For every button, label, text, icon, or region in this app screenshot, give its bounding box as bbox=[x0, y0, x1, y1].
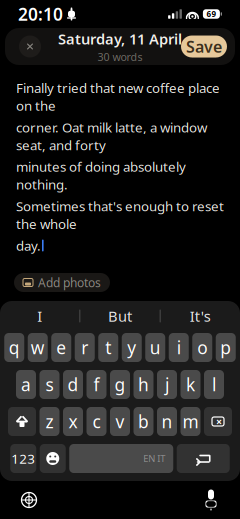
button[interactable]: a bbox=[16, 370, 36, 399]
staticText: l bbox=[212, 373, 216, 396]
button[interactable]: z bbox=[39, 407, 59, 436]
button[interactable]: w bbox=[28, 333, 48, 362]
button[interactable]: q bbox=[4, 333, 24, 362]
button[interactable]: 123 bbox=[10, 444, 36, 473]
staticText: x bbox=[68, 410, 77, 433]
staticText: 30 words bbox=[97, 50, 142, 64]
staticText: w bbox=[31, 336, 45, 359]
button[interactable]: g bbox=[110, 370, 130, 399]
staticText: z bbox=[45, 410, 53, 433]
staticText: p bbox=[220, 336, 231, 359]
button[interactable]: t bbox=[98, 333, 118, 362]
staticText: minutes of doing absolutely nothing. bbox=[16, 158, 186, 193]
staticText: EN IT bbox=[143, 452, 165, 465]
staticText: v bbox=[115, 410, 124, 433]
button[interactable]: n bbox=[157, 407, 177, 436]
staticText: o bbox=[197, 336, 207, 359]
button[interactable]: I bbox=[0, 301, 79, 331]
staticText: a bbox=[21, 373, 31, 396]
button[interactable]: k bbox=[180, 370, 200, 399]
button[interactable]: But bbox=[80, 301, 160, 331]
button[interactable]: Delete bbox=[204, 407, 232, 436]
staticText: day. bbox=[16, 237, 41, 254]
button[interactable]: Dictate bbox=[196, 485, 226, 515]
button[interactable]: b bbox=[133, 407, 153, 436]
staticText: n bbox=[161, 410, 172, 433]
button[interactable]: d bbox=[63, 370, 83, 399]
staticText: k bbox=[186, 373, 195, 396]
button[interactable]: u bbox=[145, 333, 165, 362]
staticText: But bbox=[108, 306, 132, 326]
button[interactable]: c bbox=[86, 407, 106, 436]
staticText: It's bbox=[190, 306, 211, 326]
button[interactable]: o bbox=[192, 333, 212, 362]
button[interactable]: p bbox=[216, 333, 236, 362]
button[interactable]: e bbox=[51, 333, 71, 362]
staticText: 20:10 bbox=[18, 2, 63, 25]
staticText: Finally tried that new coffee place on t… bbox=[16, 79, 220, 114]
staticText: g bbox=[114, 373, 125, 396]
staticText: r bbox=[81, 336, 88, 359]
staticText: I bbox=[37, 306, 42, 326]
staticText: h bbox=[138, 373, 149, 396]
button[interactable]: y bbox=[122, 333, 142, 362]
staticText: 123 bbox=[11, 450, 35, 467]
button[interactable]: Switch keyboard bbox=[14, 485, 44, 515]
button[interactable]: l bbox=[204, 370, 224, 399]
staticText: j bbox=[165, 373, 169, 396]
button[interactable]: Shift bbox=[8, 407, 36, 436]
staticText: Save bbox=[186, 36, 222, 57]
staticText: t bbox=[105, 336, 111, 359]
button[interactable]: v bbox=[110, 407, 130, 436]
staticText: q bbox=[9, 336, 20, 359]
button[interactable]: j bbox=[157, 370, 177, 399]
staticText: × bbox=[216, 414, 222, 429]
button[interactable]: x bbox=[63, 407, 83, 436]
staticText: d bbox=[67, 373, 78, 396]
button[interactable]: Save bbox=[181, 35, 227, 57]
button[interactable]: Emoji bbox=[40, 444, 66, 473]
staticText: Add photos bbox=[38, 274, 101, 290]
staticText: Saturday, 11 April bbox=[58, 29, 182, 49]
button[interactable]: s bbox=[39, 370, 59, 399]
staticText: c bbox=[92, 410, 100, 433]
button[interactable]: h bbox=[133, 370, 153, 399]
button[interactable]: Space bbox=[69, 444, 173, 473]
button[interactable]: f bbox=[86, 370, 106, 399]
staticText: e bbox=[56, 336, 66, 359]
button[interactable]: r bbox=[75, 333, 95, 362]
button[interactable]: Return bbox=[177, 444, 230, 473]
staticText: s bbox=[45, 373, 53, 396]
button[interactable]: i bbox=[169, 333, 189, 362]
staticText: m bbox=[182, 410, 198, 433]
button[interactable]: Add photos bbox=[14, 273, 110, 292]
staticText: f bbox=[93, 373, 99, 396]
staticText: 69 bbox=[206, 9, 216, 19]
staticText: Sometimes that's enough to reset the who… bbox=[16, 197, 224, 233]
button[interactable]: Close bbox=[13, 29, 47, 63]
staticText: u bbox=[150, 336, 161, 359]
button[interactable]: It's bbox=[161, 301, 240, 331]
staticText: b bbox=[138, 410, 149, 433]
button[interactable]: m bbox=[180, 407, 200, 436]
staticText: y bbox=[127, 336, 136, 359]
staticText: corner. Oat milk latte, a window seat, a… bbox=[16, 118, 207, 154]
staticText: i bbox=[177, 336, 181, 359]
